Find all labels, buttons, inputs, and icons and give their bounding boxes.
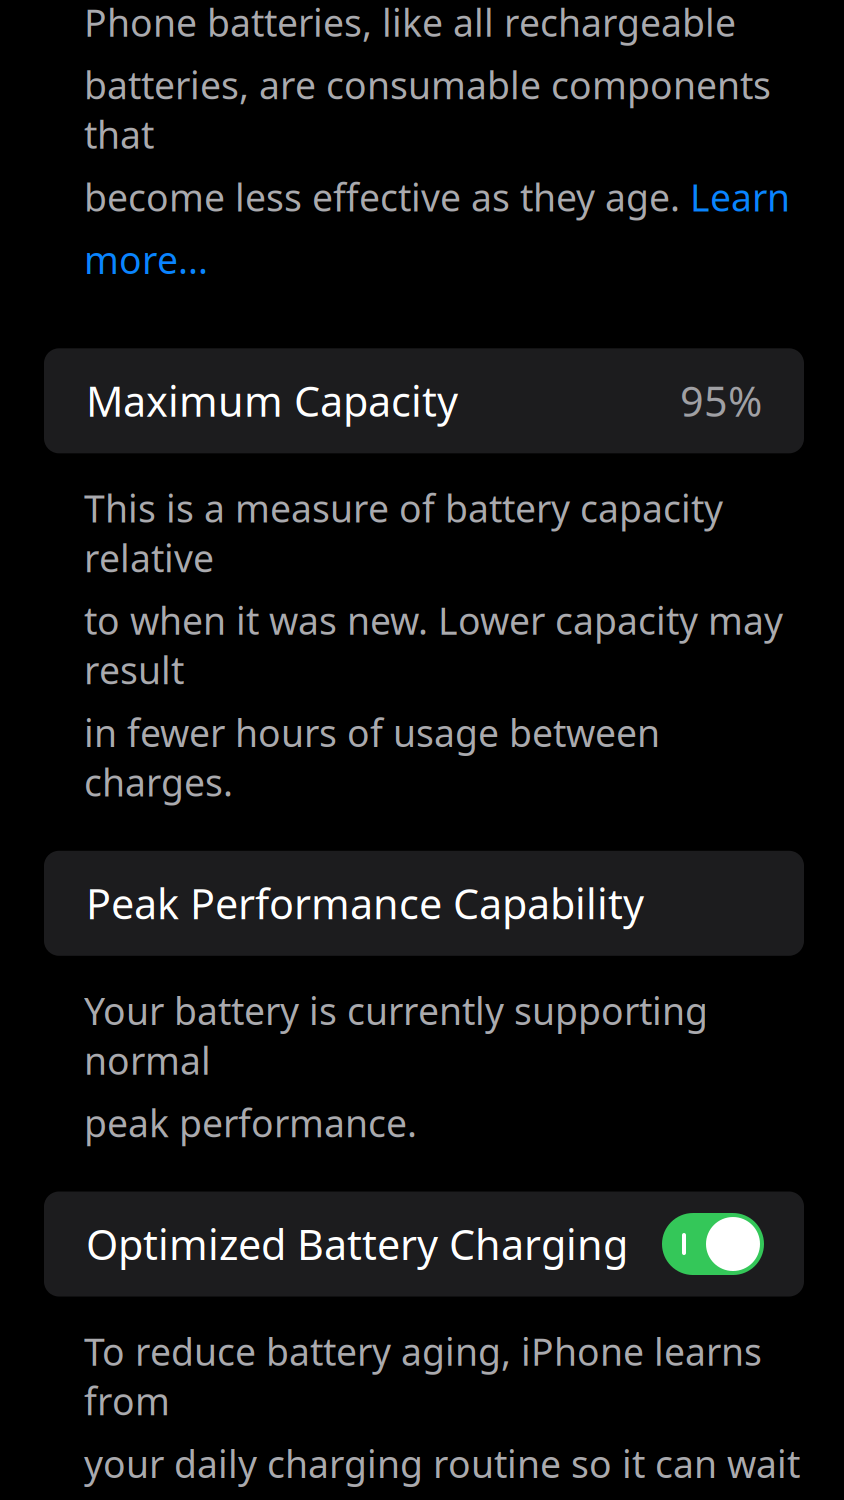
staticText: batteries, are consumable components tha…	[84, 60, 771, 159]
staticText: become less effective as they age.	[84, 172, 690, 222]
staticText: Your battery is currently supporting nor…	[84, 986, 708, 1085]
staticText: your daily charging routine so it can wa…	[84, 1439, 800, 1500]
staticText: Phone batteries, like all rechargeable	[84, 0, 736, 47]
button[interactable]: Learn	[690, 172, 790, 222]
staticText: Optimized Battery Charging	[86, 1217, 628, 1271]
button[interactable]: Optimized Battery Charging	[44, 1191, 804, 1296]
staticText: Peak Performance Capability	[86, 876, 644, 931]
staticText: This is a measure of battery capacity re…	[84, 483, 723, 582]
staticText: To reduce battery aging, iPhone learns f…	[84, 1326, 762, 1426]
staticText: Learn	[690, 172, 790, 222]
button[interactable]: Maximum Capacity	[44, 348, 804, 453]
staticText: peak performance.	[84, 1098, 417, 1147]
button[interactable]: Peak Performance Capability	[44, 851, 804, 956]
staticText: Maximum Capacity	[86, 373, 458, 428]
button[interactable]: more...	[84, 235, 208, 284]
staticText: in fewer hours of usage between charges.	[84, 708, 660, 807]
staticText: 95%	[680, 373, 762, 428]
staticText: more...	[84, 235, 208, 284]
staticText: to when it was new. Lower capacity may r…	[84, 595, 783, 695]
